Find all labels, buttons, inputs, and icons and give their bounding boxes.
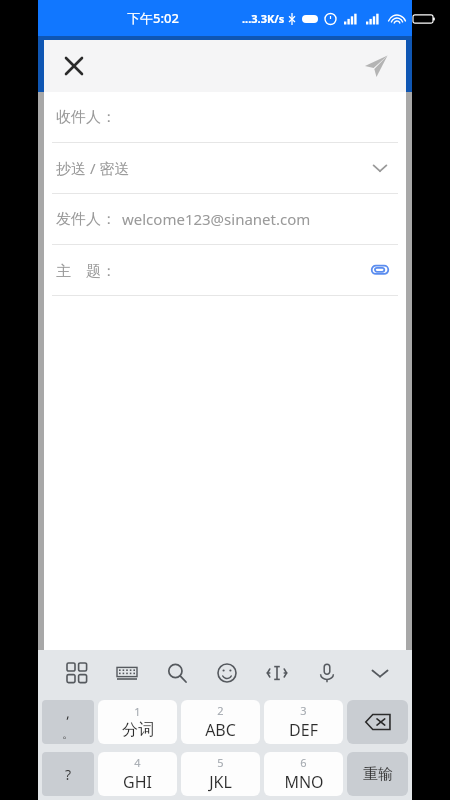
staticText: ? xyxy=(65,765,72,784)
staticText: MNO xyxy=(284,771,324,793)
staticText: JKL xyxy=(209,771,232,793)
button[interactable]: 主 题： xyxy=(38,245,412,296)
button[interactable]: 4 xyxy=(98,752,177,796)
button[interactable]: 3 xyxy=(264,700,343,744)
staticText: 2 xyxy=(217,703,224,718)
staticText: GHI xyxy=(123,771,152,793)
button[interactable]: Emoji xyxy=(202,653,252,693)
button[interactable]: Close xyxy=(52,44,96,88)
button[interactable]: ? xyxy=(42,752,94,796)
button[interactable]: Backspace xyxy=(347,700,408,744)
staticText: 抄送 / 密送 xyxy=(56,158,130,178)
staticText: 发件人： xyxy=(56,210,116,229)
button[interactable]: Send xyxy=(354,44,398,88)
button[interactable]: Expand xyxy=(366,154,394,182)
button[interactable]: 重输 xyxy=(347,752,408,796)
button[interactable]: Text cursor xyxy=(252,653,302,693)
button[interactable]: Search xyxy=(152,653,202,693)
staticText: welcome123@sinanet.com xyxy=(122,209,311,229)
staticText: 主 题： xyxy=(56,260,116,280)
button[interactable]: 发件人： xyxy=(38,194,412,245)
button[interactable]: , xyxy=(42,700,94,744)
staticText: , xyxy=(66,703,70,722)
staticText: 重输 xyxy=(363,765,393,784)
staticText: 5 xyxy=(217,755,224,770)
staticText: DEF xyxy=(289,719,318,741)
staticText: 6 xyxy=(300,755,307,770)
staticText: ...3.3K/s xyxy=(242,11,285,26)
button[interactable]: 2 xyxy=(181,700,260,744)
button[interactable]: Voice input xyxy=(302,653,352,693)
staticText: 1 xyxy=(134,704,141,719)
staticText: 3 xyxy=(300,703,307,718)
button[interactable]: 抄送 / 密送 xyxy=(38,143,412,194)
button[interactable]: 收件人： xyxy=(38,92,412,143)
button[interactable]: 6 xyxy=(264,752,343,796)
staticText: 4 xyxy=(134,755,141,770)
button[interactable]: Attach file xyxy=(366,256,394,284)
staticText: 。 xyxy=(62,726,74,741)
button[interactable]: 1 xyxy=(98,700,177,744)
button[interactable]: Keyboard xyxy=(102,653,152,693)
button[interactable]: Keyboard layouts xyxy=(52,653,102,693)
staticText: 收件人： xyxy=(56,108,116,127)
staticText: ABC xyxy=(205,719,236,741)
button[interactable]: 5 xyxy=(181,752,260,796)
staticText: 下午5:02 xyxy=(127,9,179,27)
staticText: 分词 xyxy=(122,720,154,740)
button[interactable]: Hide keyboard xyxy=(362,655,398,691)
